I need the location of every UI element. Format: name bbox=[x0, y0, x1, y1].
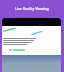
staticText: Live Reality Viewing bbox=[15, 6, 49, 11]
button[interactable]: Live Reality Viewing bbox=[0, 0, 64, 16]
button[interactable] bbox=[9, 49, 12, 51]
button[interactable] bbox=[13, 49, 25, 51]
